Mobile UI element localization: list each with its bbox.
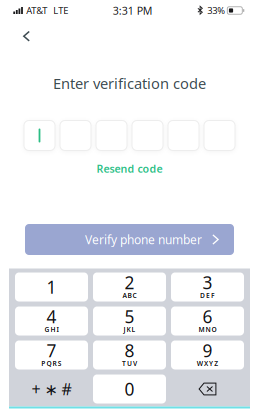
staticText: J [123,325,125,334]
staticText: U [127,359,132,368]
staticText: LTE [53,4,68,17]
staticText: Z [214,359,218,368]
button[interactable]: Delete [171,374,244,403]
staticText: 0 [124,377,134,400]
staticText: T [122,359,126,368]
staticText: E [206,291,210,300]
staticText: R [52,359,56,368]
staticText: 9 [202,339,212,362]
staticText: 8 [124,339,134,362]
staticText: Q [46,359,51,368]
staticText: K [126,325,130,334]
staticText: X [204,359,208,368]
staticText: 3:31 PM [113,3,153,18]
staticText: Enter verification code [53,74,206,93]
staticText: Resend code [96,161,162,176]
staticText: AT&T [26,4,47,17]
staticText: V [133,359,137,368]
button[interactable]: 1 [15,272,88,301]
staticText: 2 [124,271,134,294]
staticText: N [205,325,210,334]
staticText: Y [209,359,213,368]
staticText: + ∗ # [31,378,71,400]
staticText: S [58,359,62,368]
button[interactable]: 7 [15,340,88,369]
staticText: 1 [46,275,56,298]
staticText: F [211,291,215,300]
button[interactable]: 3 [171,272,244,301]
button[interactable]: 8 [93,340,166,369]
staticText: 3 [202,271,212,294]
button[interactable]: Resend code [90,158,168,179]
button[interactable]: Verify phone number [25,224,234,255]
staticText: 6 [202,305,212,328]
staticText: A [122,291,126,300]
staticText: 33% [207,4,225,17]
button[interactable]: Symbols [15,374,88,403]
staticText: G [44,325,49,334]
button[interactable]: 9 [171,340,244,369]
button[interactable]: 0 [93,374,166,403]
staticText: Verify phone number [85,231,202,247]
staticText: P [41,359,45,368]
staticText: O [212,325,217,334]
staticText: C [133,291,137,300]
staticText: 5 [124,305,134,328]
button[interactable]: 4 [15,306,88,335]
staticText: W [197,359,203,368]
button[interactable]: 2 [93,272,166,301]
staticText: M [198,325,204,334]
staticText: 4 [46,305,56,328]
button[interactable]: 5 [93,306,166,335]
staticText: D [200,291,205,300]
staticText: L [132,325,136,334]
button[interactable]: Back [12,23,41,50]
staticText: 7 [46,339,56,362]
staticText: B [127,291,131,300]
button[interactable]: 6 [171,306,244,335]
staticText: I [57,325,59,334]
staticText: H [50,325,55,334]
